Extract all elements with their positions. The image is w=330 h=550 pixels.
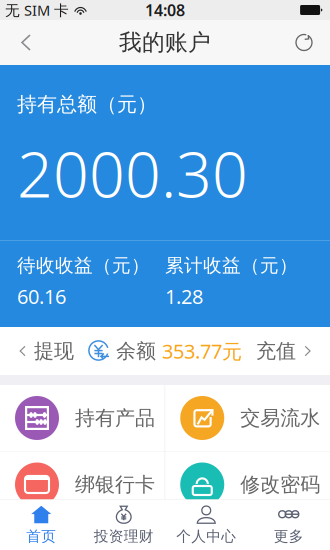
button[interactable]: 交易流水 <box>165 385 330 451</box>
button[interactable]: 修改密码 <box>165 451 330 517</box>
staticText: 持有总额（元） <box>17 92 157 117</box>
button[interactable]: 绑银行卡 <box>0 451 165 517</box>
staticText: 无 SIM 卡 <box>5 0 69 20</box>
staticText: 1.28 <box>165 283 203 309</box>
button[interactable]: 首页 <box>0 499 82 550</box>
button[interactable]: 持有产品 <box>0 385 165 451</box>
button[interactable]: 更多 <box>247 499 330 550</box>
staticText: 提现 <box>34 339 74 363</box>
staticText: 60.16 <box>17 283 66 309</box>
button[interactable]: 充值 <box>244 327 330 375</box>
staticText: 个人中心 <box>176 527 236 545</box>
staticText: 投资理财 <box>94 527 154 545</box>
staticText: 持有产品 <box>75 406 155 430</box>
staticText: 交易流水 <box>240 406 320 430</box>
staticText: 余额 <box>116 339 156 363</box>
staticText: 绑银行卡 <box>75 472 155 497</box>
staticText: 待收收益（元） <box>17 254 150 277</box>
button[interactable]: 投资理财 <box>82 499 165 550</box>
staticText: 修改密码 <box>240 472 320 497</box>
staticText: 我的账户 <box>119 29 211 56</box>
staticText: 充值 <box>256 339 296 363</box>
staticText: 14:08 <box>145 0 185 21</box>
staticText: 2000.30 <box>17 132 248 215</box>
button[interactable]: 提现 <box>0 327 86 375</box>
button[interactable]: Refresh <box>282 20 326 64</box>
staticText: 更多 <box>274 527 304 545</box>
staticText: 首页 <box>26 527 56 545</box>
staticText: 353.77元 <box>162 338 242 364</box>
button[interactable]: Back <box>4 20 48 64</box>
staticText: 累计收益（元） <box>165 254 298 277</box>
button[interactable]: 个人中心 <box>165 499 247 550</box>
